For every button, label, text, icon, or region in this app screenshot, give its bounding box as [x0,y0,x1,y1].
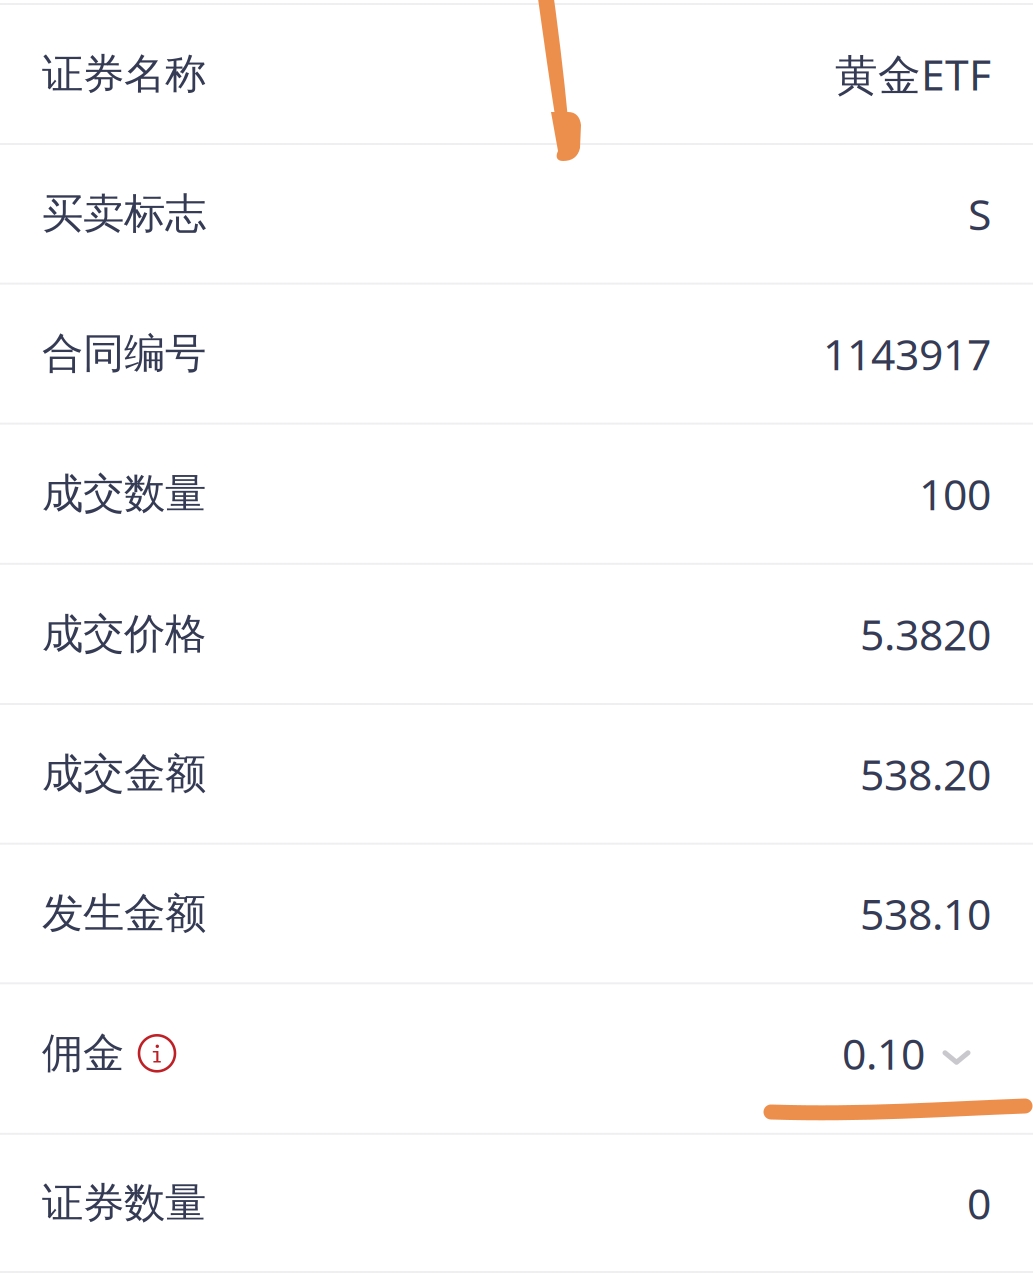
staticText: 黄金ETF [835,46,991,102]
staticText: S [968,185,991,242]
staticText: 合同编号 [42,328,206,379]
button[interactable]: 买卖标志 [0,145,1033,283]
staticText: 发生金额 [42,888,206,939]
staticText: 0 [967,1175,991,1231]
staticText: 买卖标志 [42,188,206,239]
staticText: 5.3820 [860,606,991,662]
button[interactable]: 证券数量 [0,1135,1033,1271]
button[interactable]: 成交价格 [0,565,1033,703]
staticText: 证券名称 [42,49,206,99]
staticText: 100 [919,465,991,522]
staticText: 佣金 [42,1028,124,1079]
staticText: 证券数量 [42,1177,206,1228]
staticText: 0.10 [842,1025,925,1082]
staticText: 1143917 [823,325,991,382]
staticText: 538.20 [860,745,991,802]
button[interactable]: 证券名称 [0,5,1033,143]
staticText: 538.10 [860,885,991,942]
staticText: 成交数量 [42,468,206,519]
button[interactable]: 佣金说明 [139,1035,175,1071]
button[interactable]: 发生金额 [0,845,1033,982]
button[interactable]: 成交金额 [0,705,1033,843]
button[interactable]: 佣金 [0,984,1033,1122]
staticText: 成交金额 [42,748,206,799]
button[interactable]: 合同编号 [0,285,1033,423]
button[interactable]: 成交数量 [0,425,1033,563]
staticText: 成交价格 [42,608,206,659]
